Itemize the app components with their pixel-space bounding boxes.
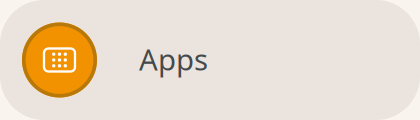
button[interactable]: Apps: [0, 0, 420, 120]
staticText: Apps: [139, 39, 208, 78]
